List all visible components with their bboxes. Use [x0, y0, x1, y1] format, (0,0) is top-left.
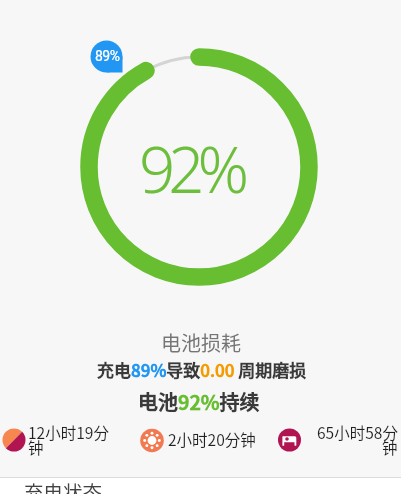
- staticText: 92%: [139, 125, 243, 211]
- staticText: 钟: [382, 436, 398, 458]
- button[interactable]: 65小时58分: [248, 421, 398, 443]
- staticText: 电池损耗: [161, 328, 241, 357]
- button[interactable]: 12小时19分: [28, 421, 109, 443]
- staticText: 充电89%导致0.00 周期磨损: [97, 357, 307, 382]
- staticText: 2小时20分钟: [168, 428, 256, 450]
- staticText: 充电状态: [24, 477, 103, 494]
- button[interactable]: 充电状态: [0, 478, 401, 495]
- staticText: 电池92%持续: [138, 387, 260, 416]
- button[interactable]: 89%: [87, 45, 128, 67]
- staticText: 钟: [28, 436, 44, 458]
- staticText: 65小时58分: [317, 421, 398, 443]
- button[interactable]: 2小时20分钟: [168, 428, 256, 450]
- staticText: 89%: [95, 48, 120, 64]
- staticText: 12小时19分: [28, 421, 109, 443]
